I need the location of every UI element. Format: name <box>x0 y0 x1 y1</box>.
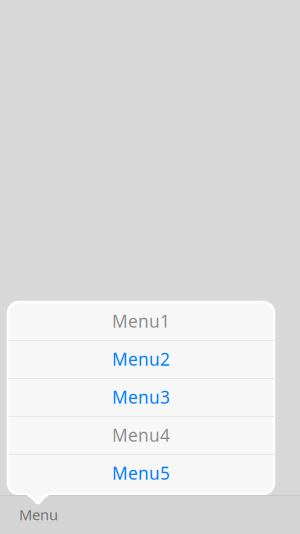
button[interactable]: Menu1 <box>8 302 274 340</box>
staticText: Menu4 <box>112 423 170 446</box>
button[interactable]: Menu <box>0 495 77 534</box>
button[interactable]: Menu2 <box>8 340 274 378</box>
staticText: Menu5 <box>112 461 170 484</box>
button[interactable]: Menu3 <box>8 378 274 416</box>
staticText: Menu <box>19 505 58 524</box>
button[interactable]: Menu4 <box>8 416 274 454</box>
staticText: Menu3 <box>112 385 170 408</box>
button[interactable]: Menu5 <box>8 454 274 492</box>
staticText: Menu1 <box>112 309 170 332</box>
staticText: Menu2 <box>112 347 170 370</box>
